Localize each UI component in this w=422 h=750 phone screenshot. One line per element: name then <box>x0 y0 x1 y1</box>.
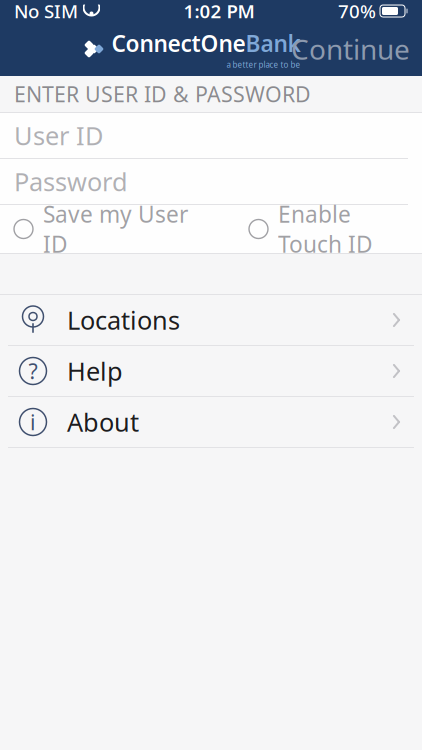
staticText: Locations <box>67 303 180 337</box>
button[interactable]: Locations <box>0 295 422 346</box>
staticText: i <box>30 408 36 436</box>
button[interactable]: Save my User ID <box>14 191 209 267</box>
staticText: No SIM <box>14 0 78 23</box>
staticText: Save my User ID <box>43 199 188 259</box>
button[interactable]: i <box>0 397 422 448</box>
staticText: ENTER USER ID & PASSWORD <box>14 80 311 108</box>
staticText: ? <box>28 357 37 385</box>
button[interactable]: Continue <box>279 22 422 76</box>
staticText: ConnectOne <box>111 28 245 58</box>
staticText: Help <box>67 354 123 388</box>
staticText: Password <box>14 165 128 198</box>
staticText: Bank <box>245 28 300 58</box>
staticText: a better place to be <box>226 59 300 70</box>
staticText: User ID <box>14 119 103 152</box>
button[interactable]: Enable Touch ID <box>249 191 414 267</box>
button[interactable]: ? <box>0 346 422 397</box>
staticText: Continue <box>291 30 410 68</box>
staticText: About <box>67 405 139 439</box>
staticText: 70% <box>338 0 376 23</box>
staticText: Enable Touch ID <box>278 199 373 259</box>
staticText: 1:02 PM <box>183 0 254 23</box>
